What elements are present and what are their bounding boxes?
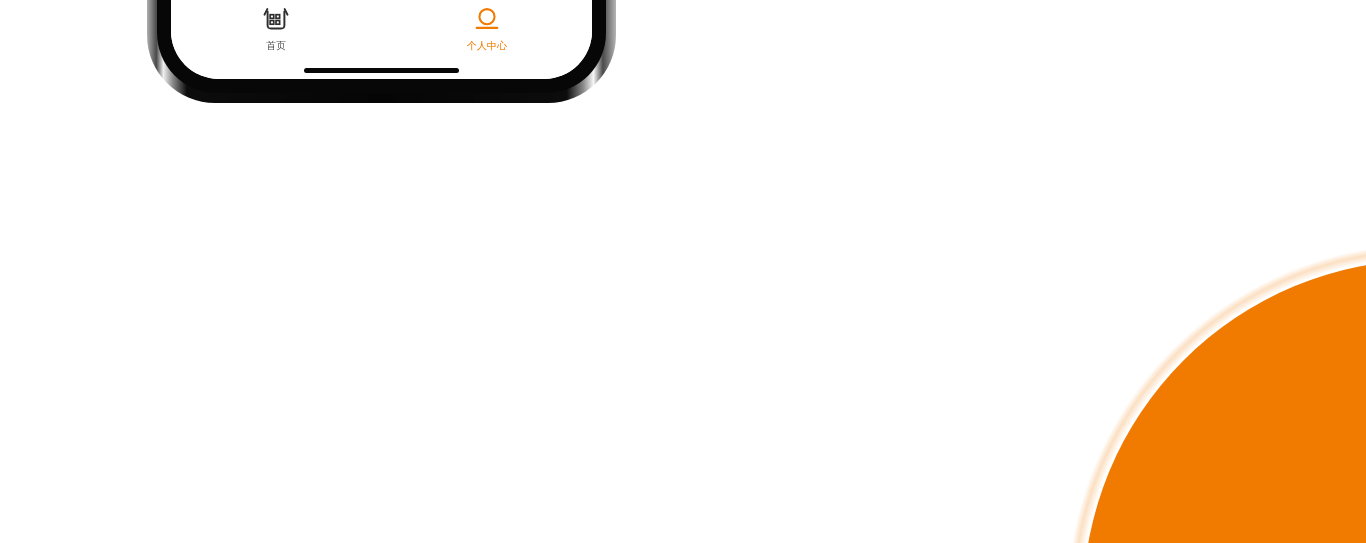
staticText: 首页 [266,39,286,52]
staticText: 个人中心 [467,39,507,52]
button[interactable]: 首页 [171,0,381,52]
button[interactable]: 个人中心 [381,0,592,52]
